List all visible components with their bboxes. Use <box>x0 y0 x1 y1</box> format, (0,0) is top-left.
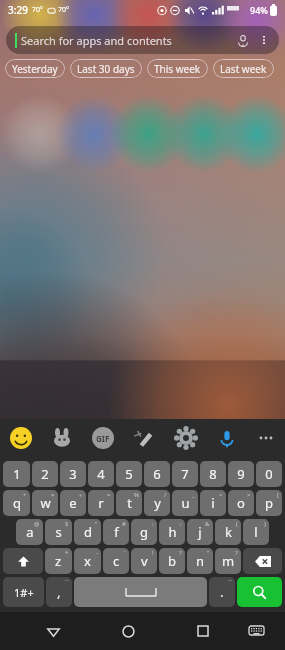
staticText: ( <box>236 520 238 528</box>
button[interactable]: 9 <box>228 461 254 487</box>
staticText: $ <box>65 520 69 528</box>
button[interactable]: t <box>116 490 142 516</box>
staticText: q <box>13 494 21 512</box>
button[interactable]: w <box>32 490 58 516</box>
button[interactable]: Settings <box>175 427 197 449</box>
button[interactable]: Search for apps and contents <box>6 26 279 54</box>
button[interactable]: j <box>187 519 213 545</box>
button[interactable]: Last week <box>213 59 274 78</box>
staticText: , <box>57 583 61 601</box>
staticText: ; <box>180 520 182 528</box>
staticText: _ <box>192 491 195 499</box>
staticText: Last week <box>220 62 267 76</box>
button[interactable]: Stickers <box>51 427 73 449</box>
button[interactable]: i <box>200 490 226 516</box>
button[interactable]: More options <box>259 32 269 48</box>
button[interactable]: Emoji <box>10 427 32 449</box>
staticText: ) <box>264 520 266 528</box>
staticText: GIF <box>96 433 110 444</box>
button[interactable]: a <box>16 519 43 545</box>
button[interactable]: v <box>131 548 157 574</box>
staticText: d <box>84 523 92 541</box>
staticText: t <box>127 494 132 512</box>
button[interactable]: x <box>74 548 101 574</box>
button[interactable]: Yesterday <box>5 59 65 78</box>
staticText: . <box>220 583 224 601</box>
button[interactable]: Voice input <box>216 427 238 449</box>
button[interactable]: b <box>159 548 185 574</box>
button[interactable]: Search <box>237 577 282 607</box>
staticText: 2 <box>41 465 49 483</box>
button[interactable]: n <box>187 548 213 574</box>
staticText: ' <box>124 549 126 557</box>
staticText: x <box>84 552 91 570</box>
button[interactable]: s <box>45 519 72 545</box>
staticText: y <box>154 494 161 512</box>
button[interactable]: Last 30 days <box>70 59 142 78</box>
button[interactable]: Draw sticker <box>133 427 155 449</box>
staticText: l <box>254 523 258 541</box>
staticText: This week <box>154 62 201 76</box>
button[interactable]: Shift <box>3 548 43 574</box>
button[interactable]: Recent apps <box>188 616 218 646</box>
button[interactable]: 1#+ <box>3 577 44 607</box>
button[interactable]: z <box>45 548 72 574</box>
button[interactable]: f <box>103 519 129 545</box>
staticText: + <box>23 491 27 499</box>
button[interactable]: . <box>209 577 235 607</box>
staticText: 4 <box>97 465 105 483</box>
staticText: Last 30 days <box>77 62 135 76</box>
button[interactable]: Hide keyboard <box>241 616 271 646</box>
staticText: & <box>205 520 210 528</box>
staticText: ! <box>152 549 154 557</box>
button[interactable]: c <box>103 548 129 574</box>
button[interactable]: p <box>256 490 282 516</box>
staticText: f <box>114 523 119 541</box>
button[interactable]: e <box>60 490 86 516</box>
button[interactable]: 1 <box>3 461 30 487</box>
staticText: ··· <box>228 577 233 584</box>
button[interactable]: Voice search <box>235 32 251 48</box>
button[interactable]: q <box>3 490 30 516</box>
button[interactable]: l <box>243 519 269 545</box>
button[interactable]: 8 <box>200 461 226 487</box>
button[interactable]: d <box>74 519 101 545</box>
button[interactable]: u <box>172 490 198 516</box>
staticText: 3:29 <box>8 3 28 17</box>
button[interactable]: Backspace <box>243 548 282 574</box>
button[interactable]: More <box>257 427 275 449</box>
button[interactable]: 5 <box>116 461 142 487</box>
button[interactable]: 4 <box>88 461 114 487</box>
button[interactable]: y <box>144 490 170 516</box>
button[interactable]: h <box>159 519 185 545</box>
staticText: 94% <box>250 4 268 16</box>
button[interactable]: m <box>215 548 241 574</box>
button[interactable]: GIF <box>92 427 114 449</box>
staticText: ? <box>179 549 182 557</box>
staticText: " <box>207 549 210 557</box>
button[interactable]: 7 <box>172 461 198 487</box>
staticText: 6 <box>153 465 161 483</box>
button[interactable]: g <box>131 519 157 545</box>
staticText: × <box>51 491 55 499</box>
staticText: 5 <box>125 465 133 483</box>
button[interactable]: r <box>88 490 114 516</box>
button[interactable]: This week <box>147 59 208 78</box>
staticText: i <box>211 494 215 512</box>
staticText: ··· <box>65 577 70 584</box>
staticText: * <box>65 549 69 557</box>
staticText: u <box>181 494 190 512</box>
button[interactable]: 3 <box>60 461 86 487</box>
button[interactable]: 2 <box>32 461 58 487</box>
button[interactable]: 0 <box>256 461 282 487</box>
button[interactable]: k <box>215 519 241 545</box>
staticText: 9 <box>237 465 245 483</box>
button[interactable]: o <box>228 490 254 516</box>
button[interactable]: , <box>46 577 72 607</box>
button[interactable]: Home <box>113 616 143 646</box>
staticText: j <box>198 523 202 541</box>
staticText: k <box>225 523 232 541</box>
button[interactable]: Space <box>74 577 207 607</box>
button[interactable]: 6 <box>144 461 170 487</box>
button[interactable]: Back <box>38 616 68 646</box>
